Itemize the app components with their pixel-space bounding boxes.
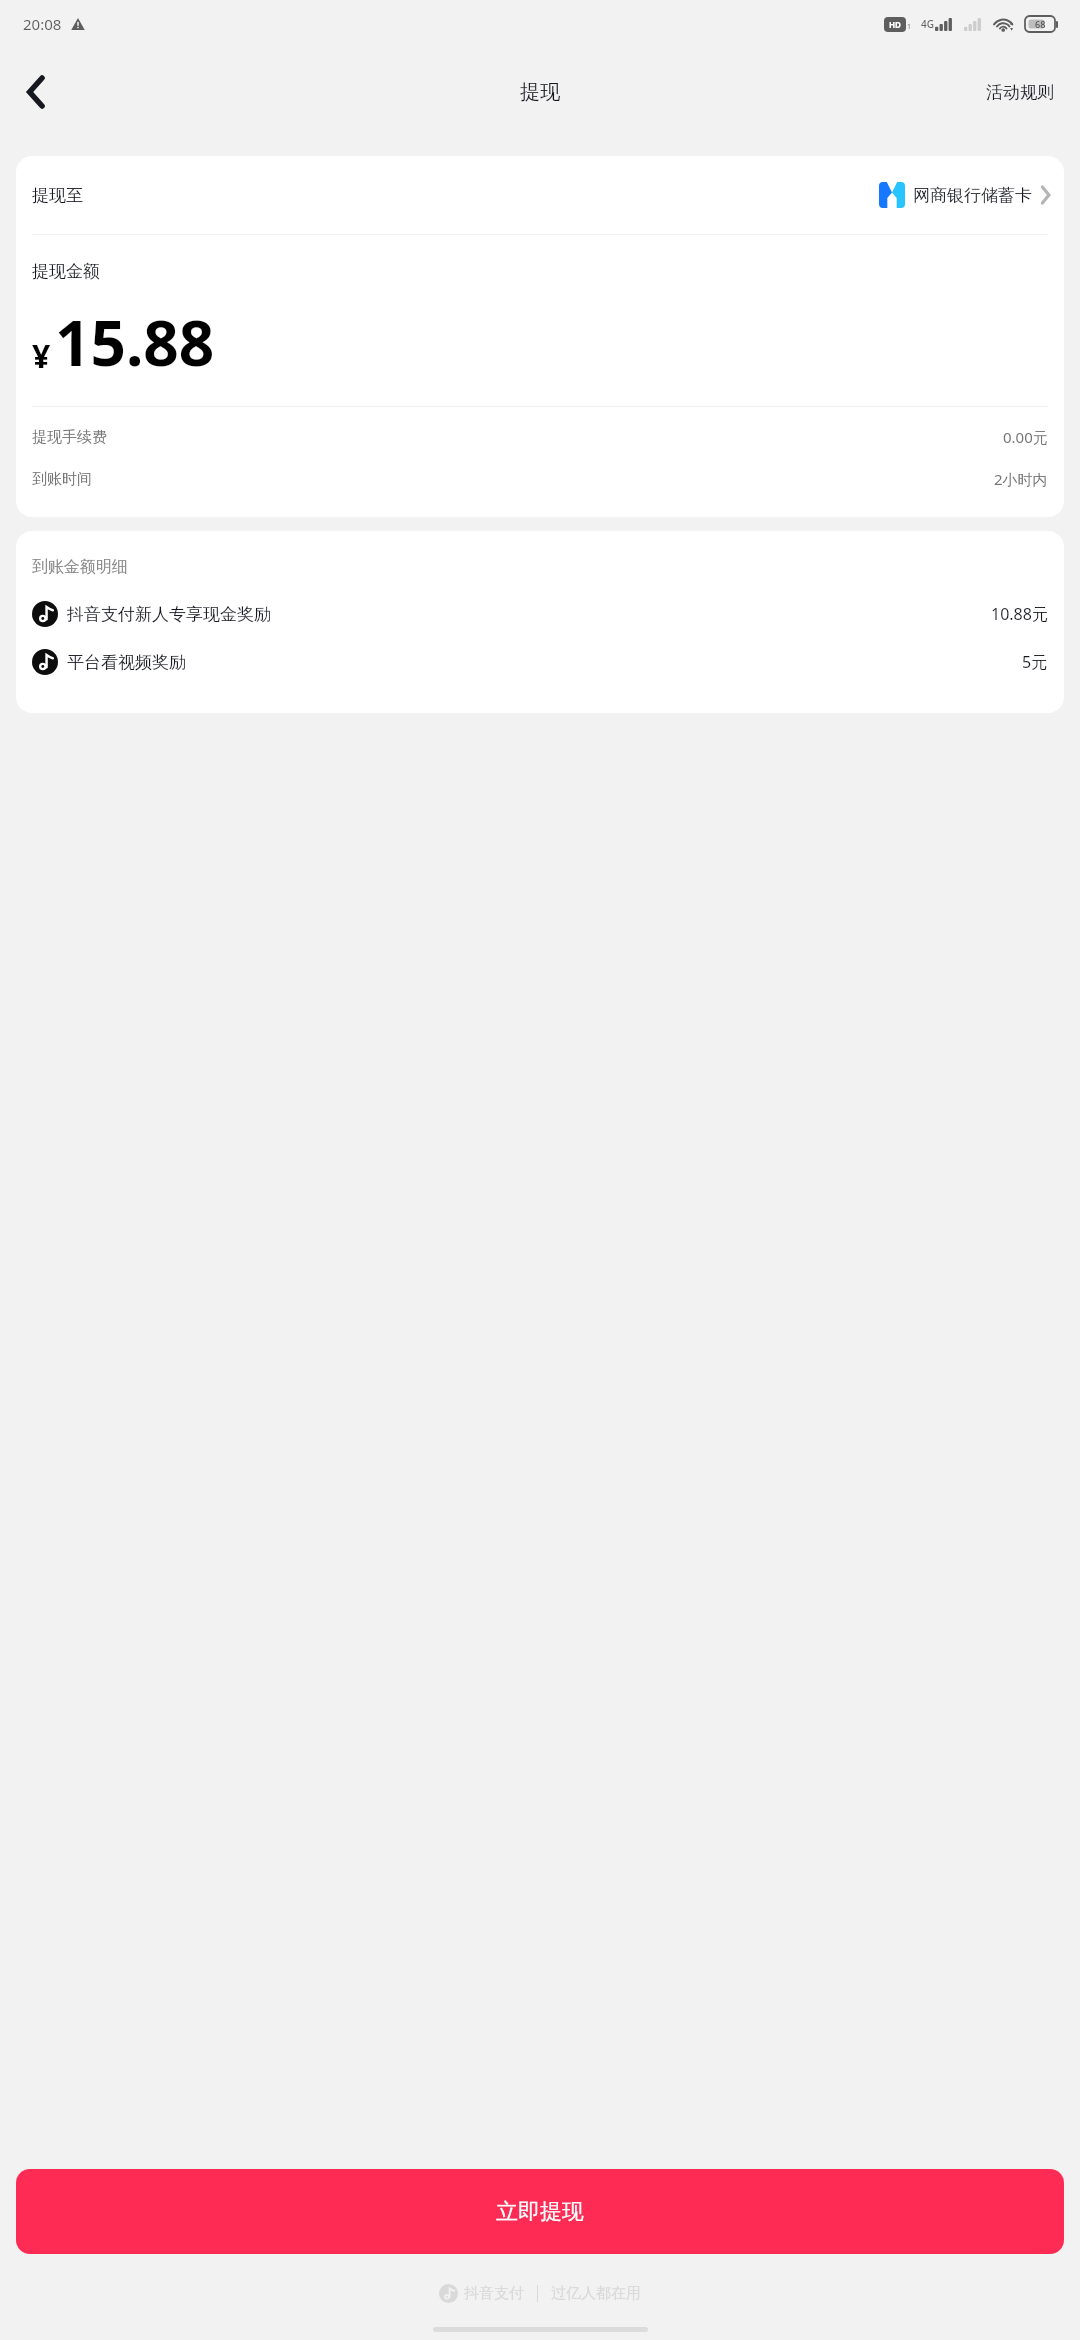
staticText: 活动规则 [986, 82, 1054, 103]
staticText: 2小时内 [994, 469, 1048, 489]
button[interactable]: 立即提现 [16, 2169, 1064, 2254]
button[interactable]: 活动规则 [976, 74, 1064, 111]
staticText: 网商银行储蓄卡 [913, 185, 1032, 206]
staticText: 5元 [1022, 651, 1048, 673]
staticText: 1 [907, 22, 912, 32]
staticText: 20:08 [23, 14, 62, 34]
staticText: 4G [921, 17, 934, 31]
staticText: 抖音支付 [464, 2284, 524, 2303]
staticText: 抖音支付新人专享现金奖励 [67, 604, 271, 625]
button[interactable]: 提现至 [16, 156, 1064, 234]
staticText: 提现手续费 [32, 428, 107, 447]
staticText: 平台看视频奖励 [67, 652, 186, 673]
staticText: 15.88 [55, 300, 215, 384]
button[interactable]: 平台看视频奖励 [16, 649, 1064, 675]
staticText: 过亿人都在用 [551, 2284, 641, 2303]
staticText: 提现至 [32, 185, 83, 206]
button[interactable]: Back [8, 64, 64, 120]
staticText: HD [889, 19, 901, 30]
staticText: ¥ [32, 334, 51, 378]
button[interactable]: 抖音支付新人专享现金奖励 [16, 601, 1064, 627]
staticText: 0.00元 [1003, 427, 1048, 447]
staticText: 提现 [520, 80, 560, 105]
staticText: 提现金额 [32, 261, 100, 282]
staticText: 10.88元 [991, 603, 1048, 625]
staticText: 68 [1035, 18, 1046, 30]
staticText: 立即提现 [496, 2198, 584, 2226]
staticText: 到账时间 [32, 470, 92, 489]
staticText: 到账金额明细 [32, 557, 128, 577]
